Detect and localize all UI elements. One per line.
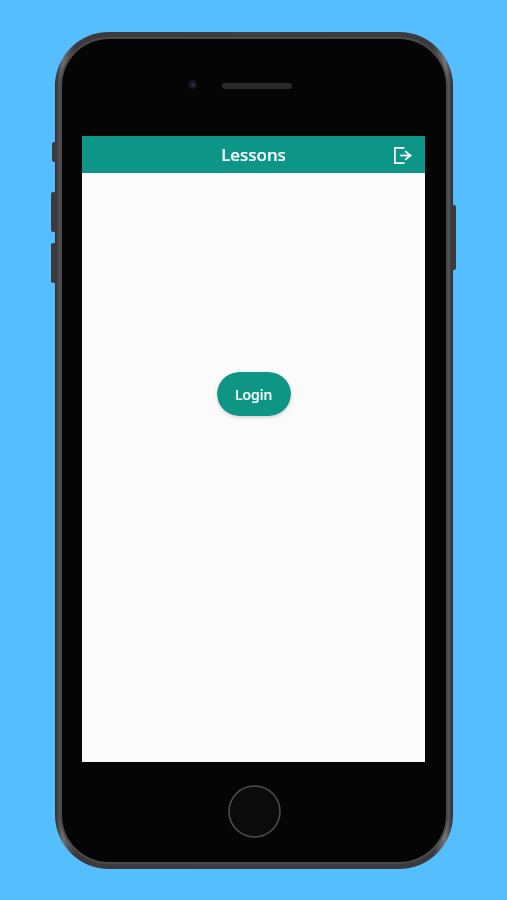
other: Home — [227, 784, 282, 839]
staticText: Login — [235, 385, 273, 404]
button[interactable]: Login — [217, 372, 291, 416]
staticText: Lessons — [82, 143, 425, 166]
button[interactable]: Logout — [387, 140, 417, 170]
